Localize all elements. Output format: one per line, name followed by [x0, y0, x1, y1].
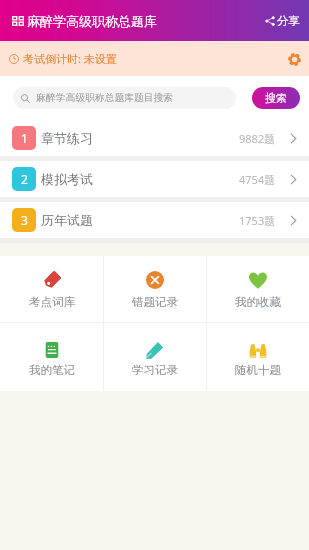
staticText: 考试倒计时: 未设置	[23, 51, 117, 66]
button[interactable]: 2	[0, 161, 309, 197]
staticText: 3	[21, 212, 28, 228]
staticText: 章节练习	[41, 130, 93, 146]
button[interactable]: 搜索	[252, 87, 300, 109]
button[interactable]: 设置	[286, 51, 302, 67]
staticText: 1	[21, 130, 28, 146]
staticText: 历年试题	[41, 212, 93, 228]
staticText: 我的笔记	[29, 363, 75, 377]
button[interactable]: 1	[0, 120, 309, 156]
button[interactable]: 我的收藏	[207, 256, 309, 322]
staticText: 2	[21, 171, 28, 187]
button[interactable]: 考点词库	[0, 256, 103, 322]
staticText: 9882题	[239, 131, 276, 146]
button[interactable]: 分享	[259, 8, 302, 34]
staticText: 我的收藏	[235, 295, 281, 309]
staticText: 错题记录	[132, 295, 178, 309]
staticText: 1753题	[239, 213, 276, 228]
staticText: 4754题	[239, 172, 276, 187]
button[interactable]: 错题记录	[104, 256, 206, 322]
button[interactable]: 3	[0, 202, 309, 238]
staticText: 搜索	[265, 91, 287, 105]
staticText: 分享	[277, 14, 300, 28]
button[interactable]: 随机十题	[207, 323, 309, 391]
button[interactable]: 麻醉学高级职称总题库题目搜索	[13, 87, 236, 109]
staticText: 学习记录	[132, 363, 178, 377]
staticText: 考点词库	[29, 295, 75, 309]
staticText: 麻醉学高级职称总题库题目搜索	[36, 92, 174, 104]
staticText: 随机十题	[235, 363, 281, 377]
button[interactable]: 我的笔记	[0, 323, 103, 391]
staticText: 麻醉学高级职称总题库	[27, 13, 157, 29]
staticText: 模拟考试	[41, 171, 93, 187]
button[interactable]: 学习记录	[104, 323, 206, 391]
